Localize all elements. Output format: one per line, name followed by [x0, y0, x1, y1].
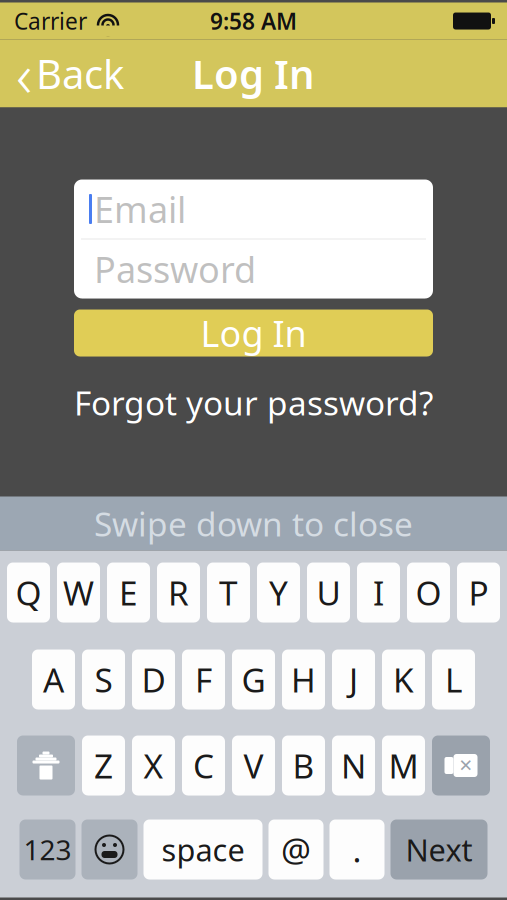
staticText: L — [445, 657, 462, 702]
staticText: 123 — [23, 831, 71, 868]
staticText: C — [193, 743, 214, 788]
button[interactable] — [390, 819, 487, 879]
staticText: G — [241, 657, 265, 702]
staticText: S — [94, 657, 112, 702]
staticText: 9:58 AM — [210, 6, 297, 36]
staticText: M — [388, 743, 418, 788]
button[interactable]: M — [382, 735, 425, 795]
button[interactable]: A — [32, 649, 75, 709]
button[interactable]: ‹ — [0, 39, 136, 107]
button[interactable]: Delete — [432, 735, 490, 795]
staticText: Forgot your password? — [74, 380, 433, 425]
button[interactable]: L — [432, 649, 475, 709]
staticText: R — [168, 570, 189, 615]
button[interactable]: Log In — [74, 309, 433, 356]
staticText: Password — [94, 245, 256, 293]
button[interactable]: E — [107, 562, 150, 622]
button[interactable]: H — [282, 649, 325, 709]
button[interactable]: B — [282, 735, 325, 795]
staticText: ‹ — [16, 33, 32, 114]
button[interactable]: Numbers — [19, 819, 75, 879]
button[interactable]: Emoji — [81, 819, 137, 879]
staticText: . — [352, 827, 361, 872]
staticText: V — [243, 743, 263, 788]
staticText: Log In — [192, 47, 315, 100]
staticText: Q — [15, 570, 41, 615]
staticText: N — [341, 743, 366, 788]
button[interactable]: K — [382, 649, 425, 709]
button[interactable]: U — [307, 562, 350, 622]
button[interactable]: Y — [257, 562, 300, 622]
staticText: D — [141, 657, 165, 702]
staticText: space — [161, 829, 244, 870]
button[interactable]: Z — [82, 735, 125, 795]
staticText: X — [143, 743, 163, 788]
staticText: B — [292, 743, 314, 788]
staticText: A — [43, 657, 64, 702]
staticText: Back — [36, 47, 124, 100]
button[interactable]: N — [332, 735, 375, 795]
staticText: Email — [94, 185, 186, 233]
button[interactable]: F — [182, 649, 225, 709]
button[interactable]: @ — [268, 819, 323, 879]
staticText: F — [195, 657, 212, 702]
staticText: J — [349, 657, 358, 702]
button[interactable]: Swipe down to close — [0, 496, 507, 550]
staticText: @ — [281, 827, 311, 872]
button[interactable]: T — [207, 562, 250, 622]
staticText: Log In — [200, 309, 306, 357]
button[interactable]: Forgot your password? — [58, 372, 449, 433]
button[interactable]: Q — [7, 562, 50, 622]
button[interactable]: space — [143, 819, 262, 879]
button[interactable]: Shift — [17, 735, 75, 795]
button[interactable]: J — [332, 649, 375, 709]
staticText: Y — [269, 570, 288, 615]
button[interactable]: I — [357, 562, 400, 622]
staticText: H — [291, 657, 316, 702]
staticText: Z — [94, 743, 113, 788]
button[interactable]: G — [232, 649, 275, 709]
staticText: T — [219, 570, 238, 615]
button[interactable]: C — [182, 735, 225, 795]
button[interactable]: S — [82, 649, 125, 709]
staticText: K — [393, 657, 414, 702]
button[interactable]: O — [407, 562, 450, 622]
staticText: Next — [405, 829, 472, 870]
staticText: I — [373, 570, 384, 615]
button[interactable]: D — [132, 649, 175, 709]
button[interactable]: P — [457, 562, 500, 622]
button[interactable]: R — [157, 562, 200, 622]
button[interactable]: X — [132, 735, 175, 795]
staticText: P — [468, 570, 488, 615]
button[interactable]: W — [57, 562, 100, 622]
staticText: W — [63, 570, 94, 615]
staticText: U — [316, 570, 340, 615]
button[interactable]: V — [232, 735, 275, 795]
button[interactable]: . — [329, 819, 384, 879]
staticText: O — [415, 570, 441, 615]
staticText: Swipe down to close — [94, 501, 413, 546]
staticText: E — [119, 570, 138, 615]
staticText: Carrier — [14, 6, 87, 36]
staticText: ✕ — [458, 756, 473, 775]
